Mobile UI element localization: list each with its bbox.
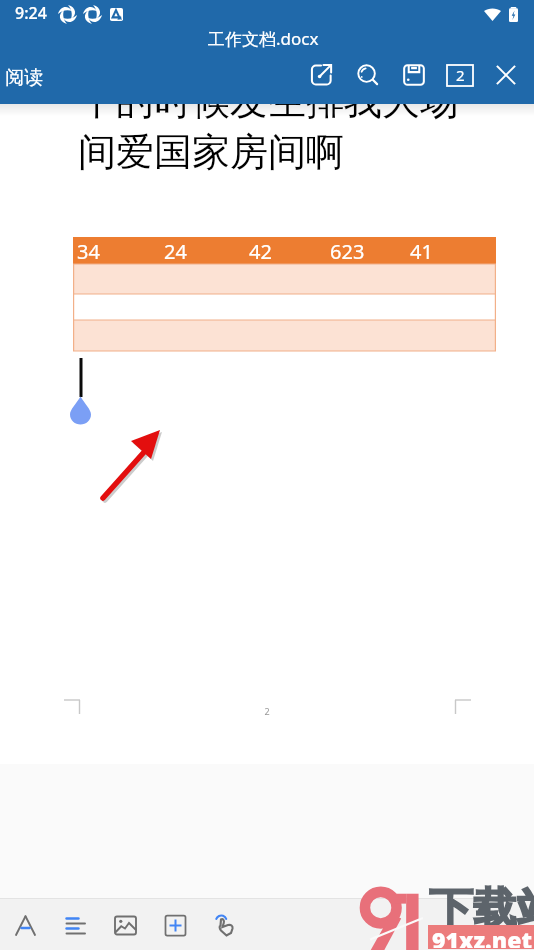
button[interactable]: Insert picture [100, 900, 150, 950]
staticText: 下载站 [429, 882, 534, 937]
staticText: 9:24 [15, 2, 47, 24]
button[interactable]: Font [0, 900, 50, 950]
staticText: 41 [410, 238, 433, 265]
staticText: 91xz.net [432, 924, 532, 948]
button[interactable]: Close [483, 55, 529, 95]
button[interactable]: Share [299, 55, 345, 95]
staticText: 2 [0, 705, 534, 717]
button[interactable]: Insert [150, 900, 200, 950]
staticText: 24 [164, 238, 187, 265]
staticText: 工作文档.docx [208, 27, 319, 50]
staticText: 623 [330, 238, 365, 265]
staticText: 阅读 [5, 66, 43, 90]
button[interactable]: Tools [200, 900, 250, 950]
button[interactable]: Save [391, 55, 437, 95]
button[interactable]: Search [345, 55, 391, 95]
button[interactable]: Paragraph [50, 900, 100, 950]
button[interactable]: 阅读 [0, 61, 48, 95]
button[interactable]: Open documents: 2 [437, 55, 483, 95]
staticText: 42 [249, 238, 272, 265]
staticText: 间爱国家房间啊 [78, 128, 344, 176]
staticText: 个的时候发生排我大场 [78, 77, 458, 125]
staticText: 2 [456, 65, 465, 85]
staticText: 34 [77, 238, 100, 265]
